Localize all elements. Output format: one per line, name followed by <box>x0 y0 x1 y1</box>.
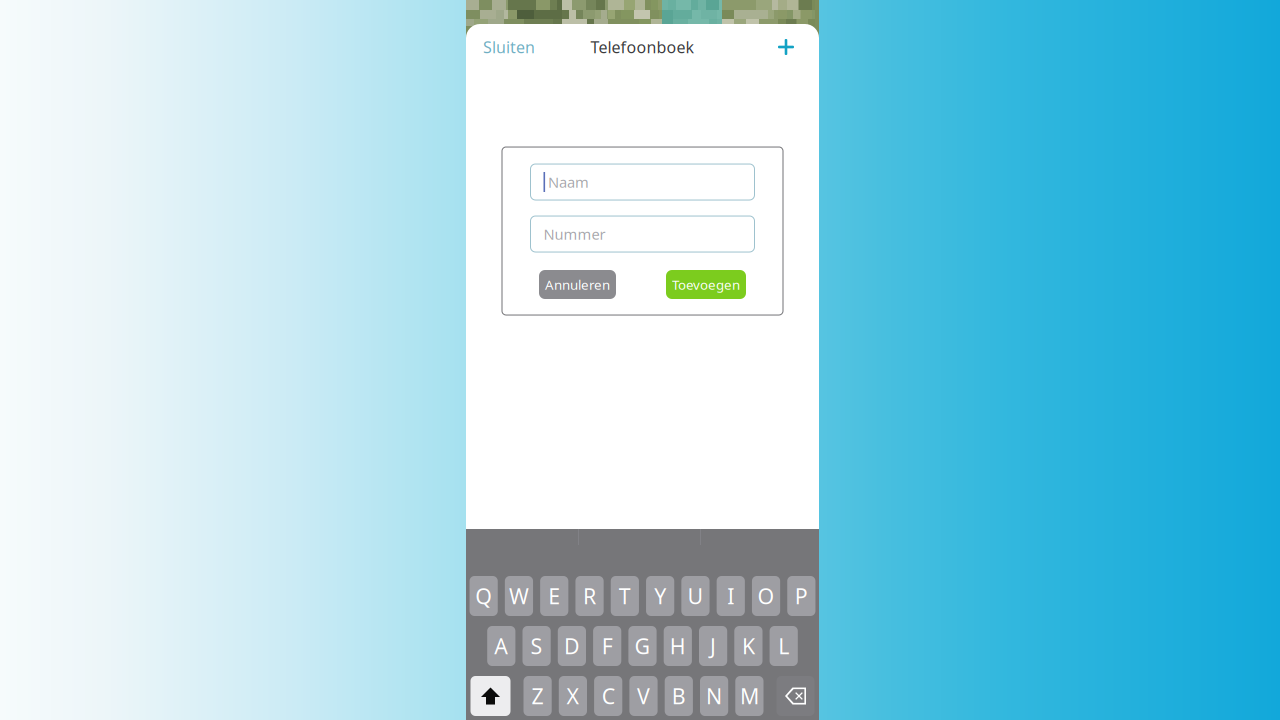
button[interactable]: F <box>593 626 621 666</box>
button[interactable]: K <box>734 626 762 666</box>
button[interactable]: C <box>594 676 622 716</box>
staticText: C <box>602 682 615 710</box>
button[interactable]: T <box>611 576 639 616</box>
button[interactable]: L <box>770 626 798 666</box>
staticText: Telefoonboek <box>590 36 694 58</box>
staticText: X <box>566 682 579 710</box>
button[interactable]: N <box>700 676 728 716</box>
staticText: Q <box>475 582 492 610</box>
staticText: V <box>637 682 650 710</box>
button[interactable]: Q <box>470 576 498 616</box>
staticText: U <box>687 582 703 610</box>
staticText: W <box>509 582 529 610</box>
staticText: S <box>531 632 543 660</box>
button[interactable]: R <box>575 576 604 616</box>
staticText: F <box>602 632 613 660</box>
staticText: L <box>778 632 789 660</box>
staticText: N <box>706 682 722 710</box>
button[interactable]: M <box>735 676 763 716</box>
staticText: Nummer <box>543 224 605 244</box>
button[interactable]: W <box>505 576 533 616</box>
button[interactable]: Sluiten <box>466 24 547 70</box>
staticText: Naam <box>548 172 589 192</box>
staticText: T <box>619 582 631 610</box>
staticText: O <box>758 582 775 610</box>
staticText: Y <box>654 582 666 610</box>
button[interactable]: P <box>787 576 815 616</box>
staticText: E <box>548 582 560 610</box>
button[interactable]: Annuleren <box>539 270 616 299</box>
button[interactable]: Nieuw contact toevoegen <box>764 24 819 70</box>
staticText: I <box>727 582 734 610</box>
button[interactable]: H <box>664 626 692 666</box>
button[interactable]: Naam <box>530 164 754 200</box>
button[interactable]: X <box>559 676 587 716</box>
button[interactable]: S <box>522 626 551 666</box>
button[interactable]: B <box>665 676 693 716</box>
button[interactable]: O <box>752 576 780 616</box>
button[interactable]: Toevoegen <box>666 270 746 299</box>
button[interactable]: G <box>628 626 657 666</box>
button[interactable]: Backspace <box>776 676 814 716</box>
staticText: A <box>494 632 508 660</box>
staticText: Annuleren <box>545 276 610 293</box>
staticText: R <box>583 582 596 610</box>
staticText: Z <box>532 682 544 710</box>
staticText: B <box>672 682 686 710</box>
button[interactable]: Shift <box>470 676 510 716</box>
button[interactable]: Z <box>523 676 552 716</box>
button[interactable]: A <box>487 626 515 666</box>
staticText: J <box>710 632 716 660</box>
staticText: P <box>795 582 808 610</box>
staticText: K <box>742 632 755 660</box>
button[interactable]: V <box>629 676 658 716</box>
staticText: H <box>670 632 686 660</box>
button[interactable]: J <box>699 626 727 666</box>
button[interactable]: Y <box>646 576 674 616</box>
staticText: M <box>740 682 759 710</box>
button[interactable]: D <box>558 626 586 666</box>
button[interactable]: Nummer <box>530 216 754 252</box>
staticText: Toevoegen <box>672 276 740 293</box>
staticText: G <box>634 632 650 660</box>
staticText: Sluiten <box>483 36 535 58</box>
button[interactable]: U <box>681 576 710 616</box>
button[interactable]: E <box>540 576 568 616</box>
staticText: D <box>564 632 580 660</box>
button[interactable]: I <box>717 576 745 616</box>
